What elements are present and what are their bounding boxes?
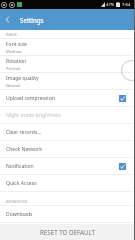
button[interactable]: Image quality — [0, 73, 135, 90]
staticText: Downloads — [6, 211, 33, 218]
staticText: Image quality — [6, 75, 39, 82]
staticText: 7:54 — [122, 2, 131, 8]
button[interactable]: Upload compression — [0, 90, 135, 107]
staticText: BASIC — [6, 32, 18, 38]
staticText: 47% — [106, 2, 115, 8]
button[interactable]: Check Network — [0, 141, 135, 158]
staticText: Check Network — [6, 146, 42, 153]
staticText: ADVANCED — [6, 199, 28, 205]
staticText: Quick Access — [6, 180, 37, 187]
staticText: Normal — [6, 83, 21, 88]
button[interactable]: Night mode brightness — [0, 107, 135, 124]
button[interactable]: Back — [0, 9, 15, 30]
button[interactable]: Font size — [0, 39, 135, 56]
staticText: Night mode brightness — [6, 112, 61, 119]
button[interactable]: RESET TO DEFAULT — [32, 225, 104, 239]
staticText: Settings — [20, 16, 44, 24]
staticText: Notification — [6, 163, 34, 170]
button[interactable]: Notification — [0, 158, 135, 175]
staticText: Font size — [6, 41, 27, 48]
button[interactable]: Downloads — [0, 206, 135, 223]
staticText: Rotation — [6, 58, 27, 65]
button[interactable]: Rotation — [0, 56, 135, 73]
button[interactable]: Clear records... — [0, 124, 135, 141]
staticText: RESET TO DEFAULT — [40, 228, 96, 236]
staticText: Clear records... — [6, 129, 42, 136]
button[interactable]: Quick Access — [0, 175, 135, 192]
staticText: Portrait — [6, 66, 21, 71]
staticText: Upload compression — [6, 95, 55, 102]
staticText: Medium — [6, 49, 22, 54]
